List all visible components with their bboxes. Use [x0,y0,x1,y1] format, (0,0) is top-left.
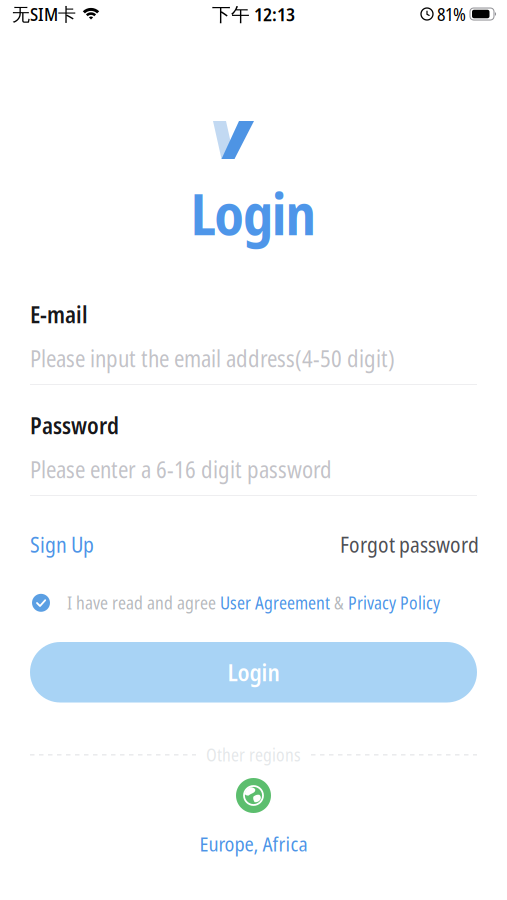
staticText: I have read and agree [67,591,220,615]
staticText: User Agreement [220,591,330,615]
button[interactable]: User Agreement [220,591,330,615]
staticText: Forgot password [340,530,479,559]
button[interactable]: Europe, Africa region [30,778,477,857]
staticText: 下午 12:13 [212,1,295,27]
button[interactable]: Forgot password [340,530,479,559]
staticText: Please input the email address(4-50 digi… [30,343,395,374]
staticText: & [330,591,348,615]
staticText: Please enter a 6-16 digit password [30,454,332,485]
staticText: Sign Up [30,530,94,559]
staticText: Other regions [206,743,301,767]
staticText: E-mail [30,299,88,330]
staticText: 81% [433,2,470,26]
staticText: Login [227,656,279,688]
button[interactable]: Agree to terms [32,594,50,612]
button[interactable]: Sign Up [30,530,94,559]
staticText: Password [30,410,119,441]
staticText: 无SIM卡 [12,2,76,26]
button[interactable]: Login [30,642,477,702]
staticText: Privacy Policy [348,591,440,615]
staticText: Login [190,174,317,252]
staticText: Europe, Africa [199,830,307,857]
button[interactable]: Privacy Policy [348,591,440,615]
